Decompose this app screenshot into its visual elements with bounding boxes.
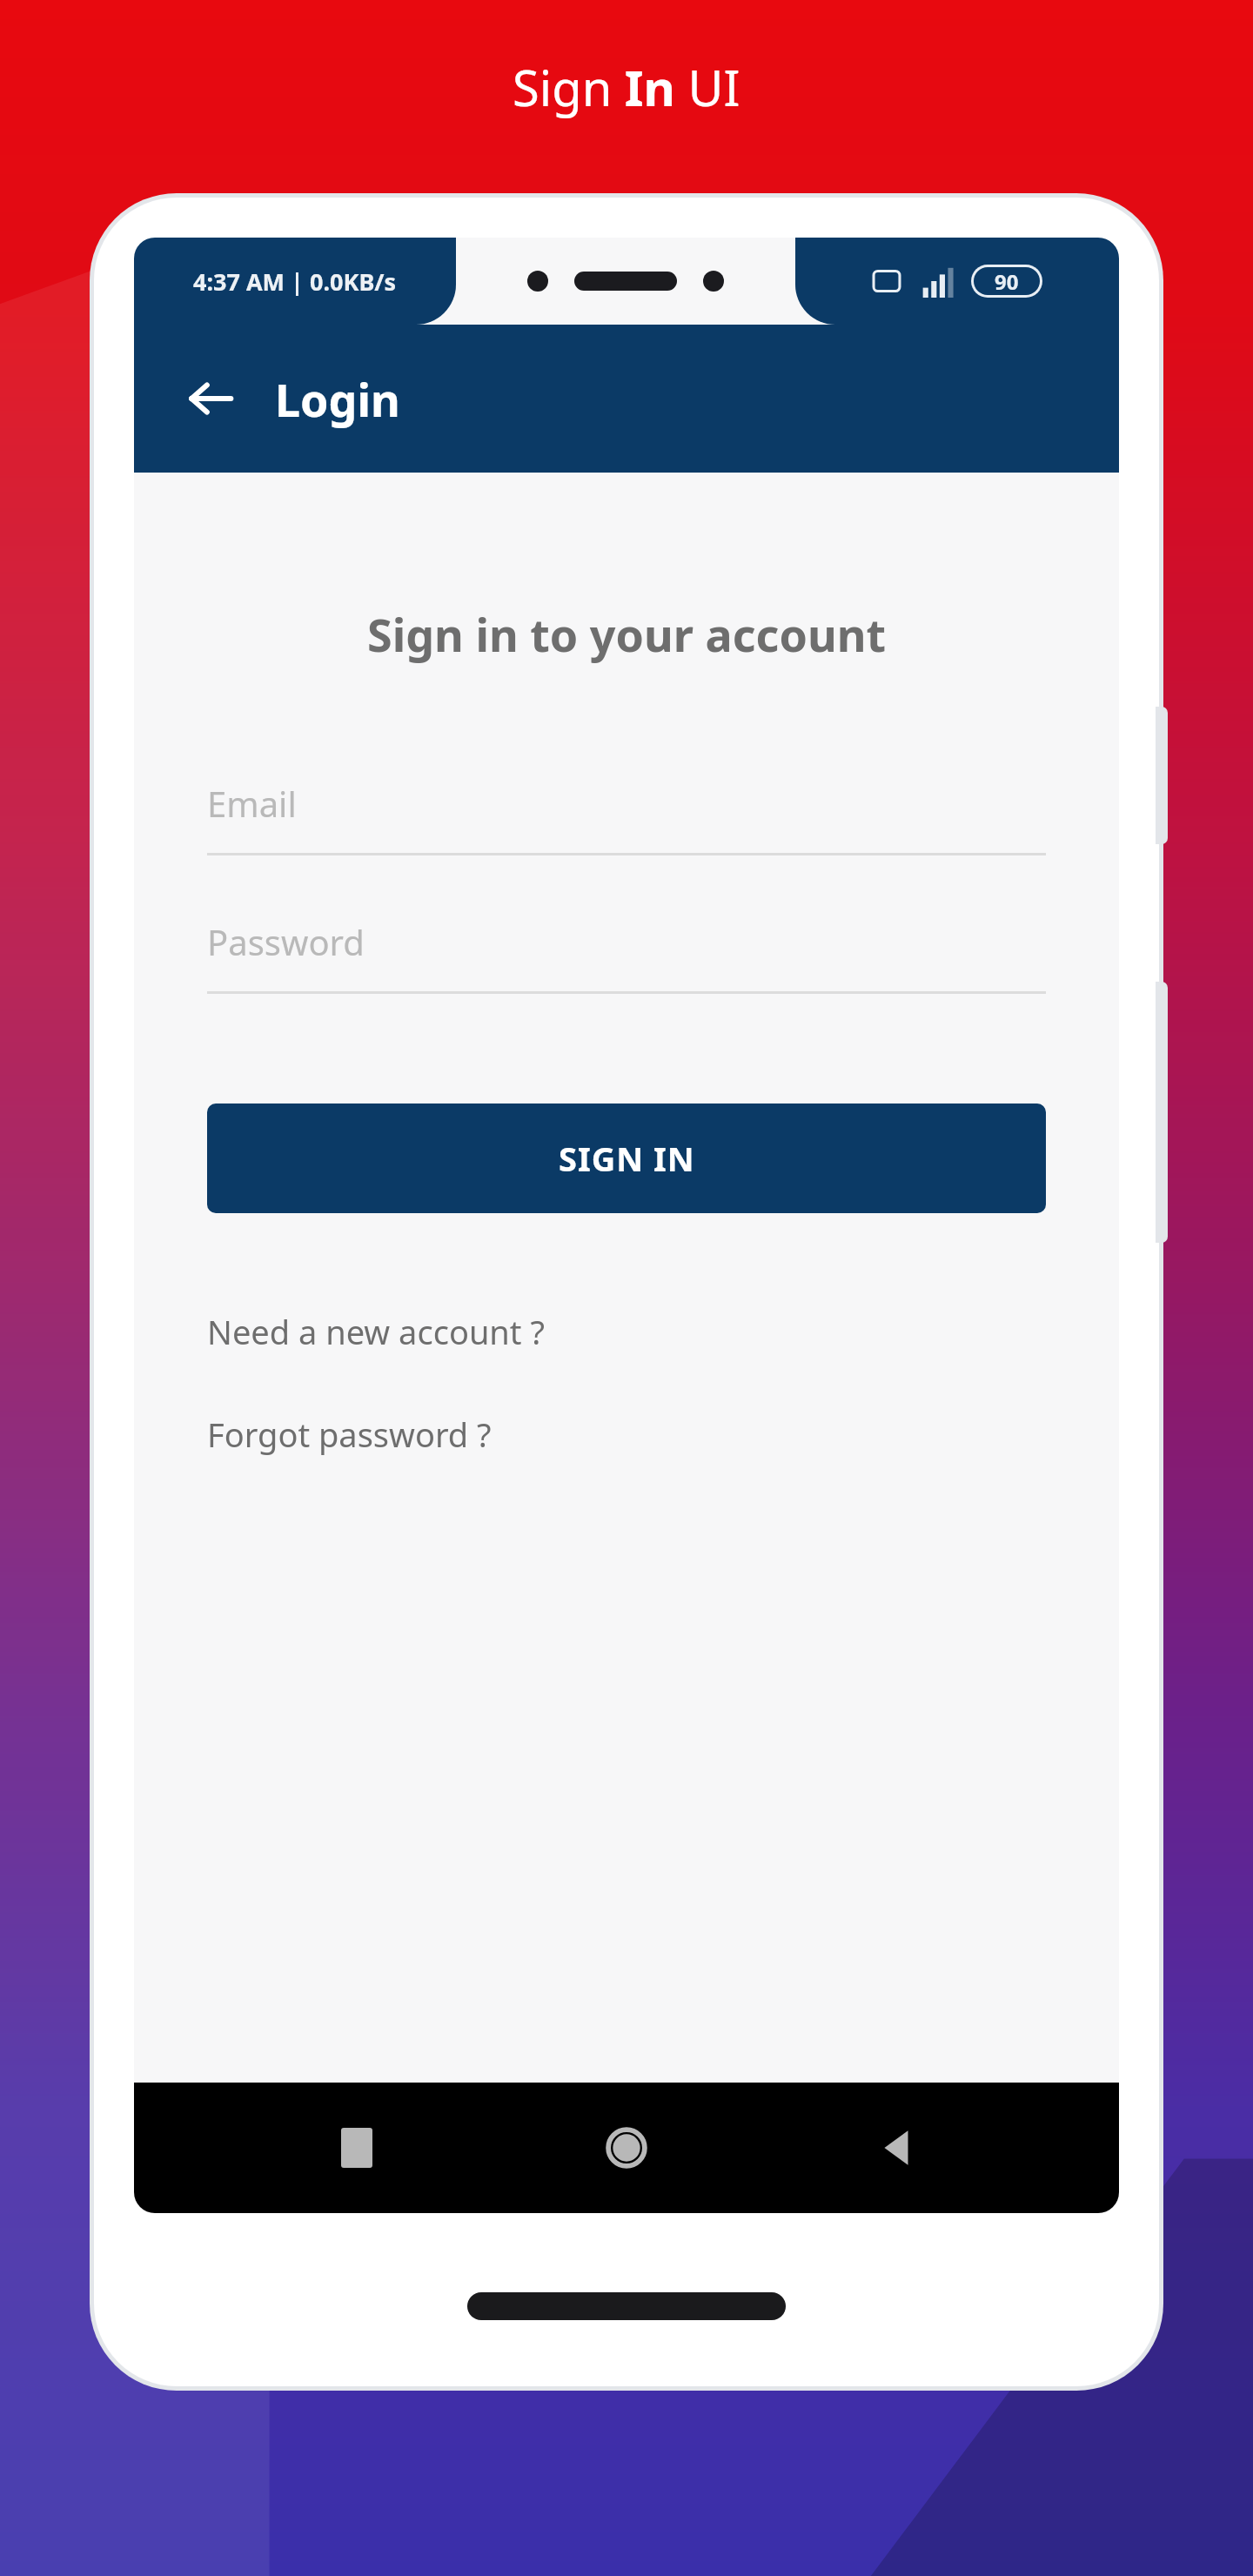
button[interactable]: Email — [207, 780, 1046, 855]
staticText: 90 — [995, 267, 1019, 295]
staticText: Forgot password ? — [207, 1412, 492, 1457]
button[interactable]: Password — [207, 918, 1046, 994]
button[interactable]: Forgot password ? — [207, 1412, 492, 1457]
staticText: Sign in to your account — [367, 603, 887, 665]
button[interactable]: Recents — [309, 2100, 405, 2196]
staticText: Email — [207, 780, 297, 827]
button[interactable]: Back — [169, 357, 252, 440]
button[interactable]: SIGN IN — [207, 1104, 1046, 1213]
staticText: 4:37 AM | 0.0KB/s — [193, 265, 397, 298]
staticText: Login — [275, 368, 400, 430]
staticText: Password — [207, 918, 365, 965]
staticText: Need a new account ? — [207, 1309, 545, 1354]
button[interactable]: Need a new account ? — [207, 1309, 545, 1354]
button[interactable]: Back — [849, 2100, 945, 2196]
staticText: Sign In UI — [513, 54, 740, 120]
button[interactable]: Home — [579, 2100, 674, 2196]
staticText: SIGN IN — [559, 1136, 695, 1181]
